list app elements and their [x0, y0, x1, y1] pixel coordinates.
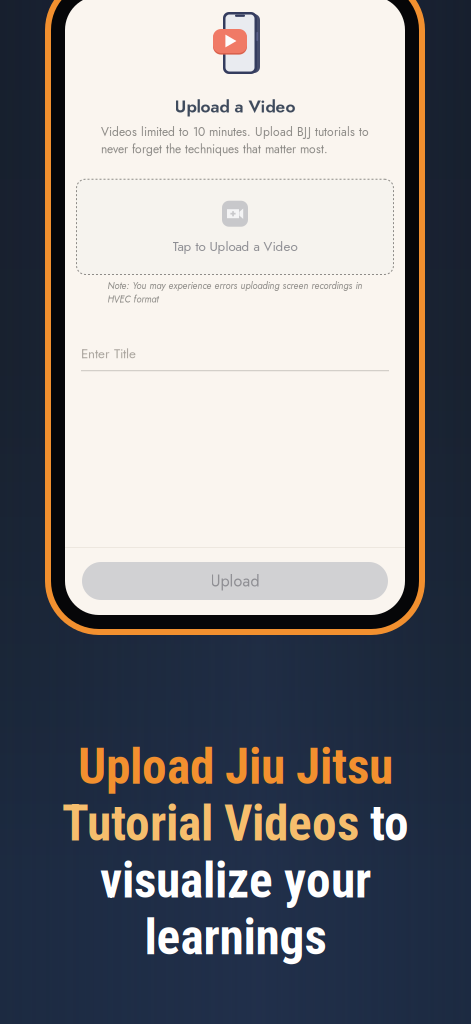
staticText: Tap to Upload a Video	[172, 237, 297, 256]
staticText: Note: You may experience errors uploadin…	[107, 279, 362, 306]
staticText: Enter Title	[81, 344, 136, 363]
staticText: Upload	[210, 569, 259, 592]
staticText: Tutorial Videos	[62, 795, 359, 853]
button[interactable]: Tap to Upload a Video	[76, 179, 394, 275]
staticText: Upload a Video	[174, 94, 295, 119]
staticText: Upload Jiu Jitsu	[78, 738, 393, 796]
staticText: Videos limited to 10 minutes. Upload BJJ…	[101, 123, 369, 158]
staticText: learnings	[144, 908, 326, 966]
staticText: visualize your	[100, 852, 371, 909]
staticText: to	[370, 795, 409, 853]
button[interactable]: Upload	[82, 562, 388, 600]
